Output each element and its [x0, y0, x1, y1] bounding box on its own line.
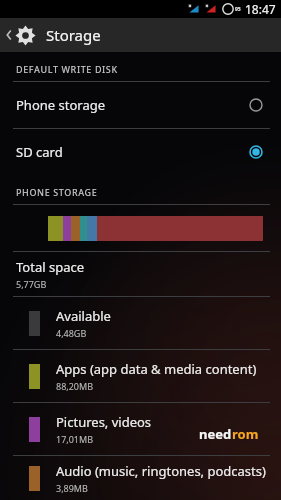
staticText: 88,20MB	[56, 380, 94, 392]
staticText: Phone storage	[16, 96, 249, 114]
button[interactable]: Audio (music, ringtones, podcasts)	[0, 456, 281, 500]
staticText: 3,89MB	[56, 482, 88, 494]
staticText: 17,01MB	[56, 433, 94, 445]
staticText: Pictures, videos	[56, 413, 152, 431]
staticText: 18:47	[245, 1, 276, 17]
button[interactable]: Total space	[0, 252, 281, 296]
staticText: rom	[232, 425, 259, 443]
button[interactable]: Apps (app data & media content)	[0, 350, 281, 402]
staticText: Available	[56, 307, 111, 325]
staticText: PHONE STORAGE	[16, 186, 98, 198]
staticText: Audio (music, ringtones, podcasts)	[56, 462, 266, 480]
staticText: Apps (app data & media content)	[56, 360, 257, 378]
button[interactable]: Pictures, videos	[0, 403, 281, 455]
staticText: Total space	[16, 258, 84, 276]
staticText: SD card	[16, 143, 249, 161]
button[interactable]: Back to Settings	[0, 18, 281, 52]
staticText: need	[199, 425, 232, 443]
staticText: 5,77GB	[16, 278, 47, 290]
button[interactable]: Phone storage	[0, 82, 281, 128]
button[interactable]: Available	[0, 297, 281, 349]
staticText: DEFAULT WRITE DISK	[16, 63, 118, 75]
staticText: 95	[235, 6, 241, 13]
button[interactable]: SD card	[0, 129, 281, 175]
staticText: Storage	[46, 25, 101, 45]
staticText: 4,48GB	[56, 327, 87, 339]
